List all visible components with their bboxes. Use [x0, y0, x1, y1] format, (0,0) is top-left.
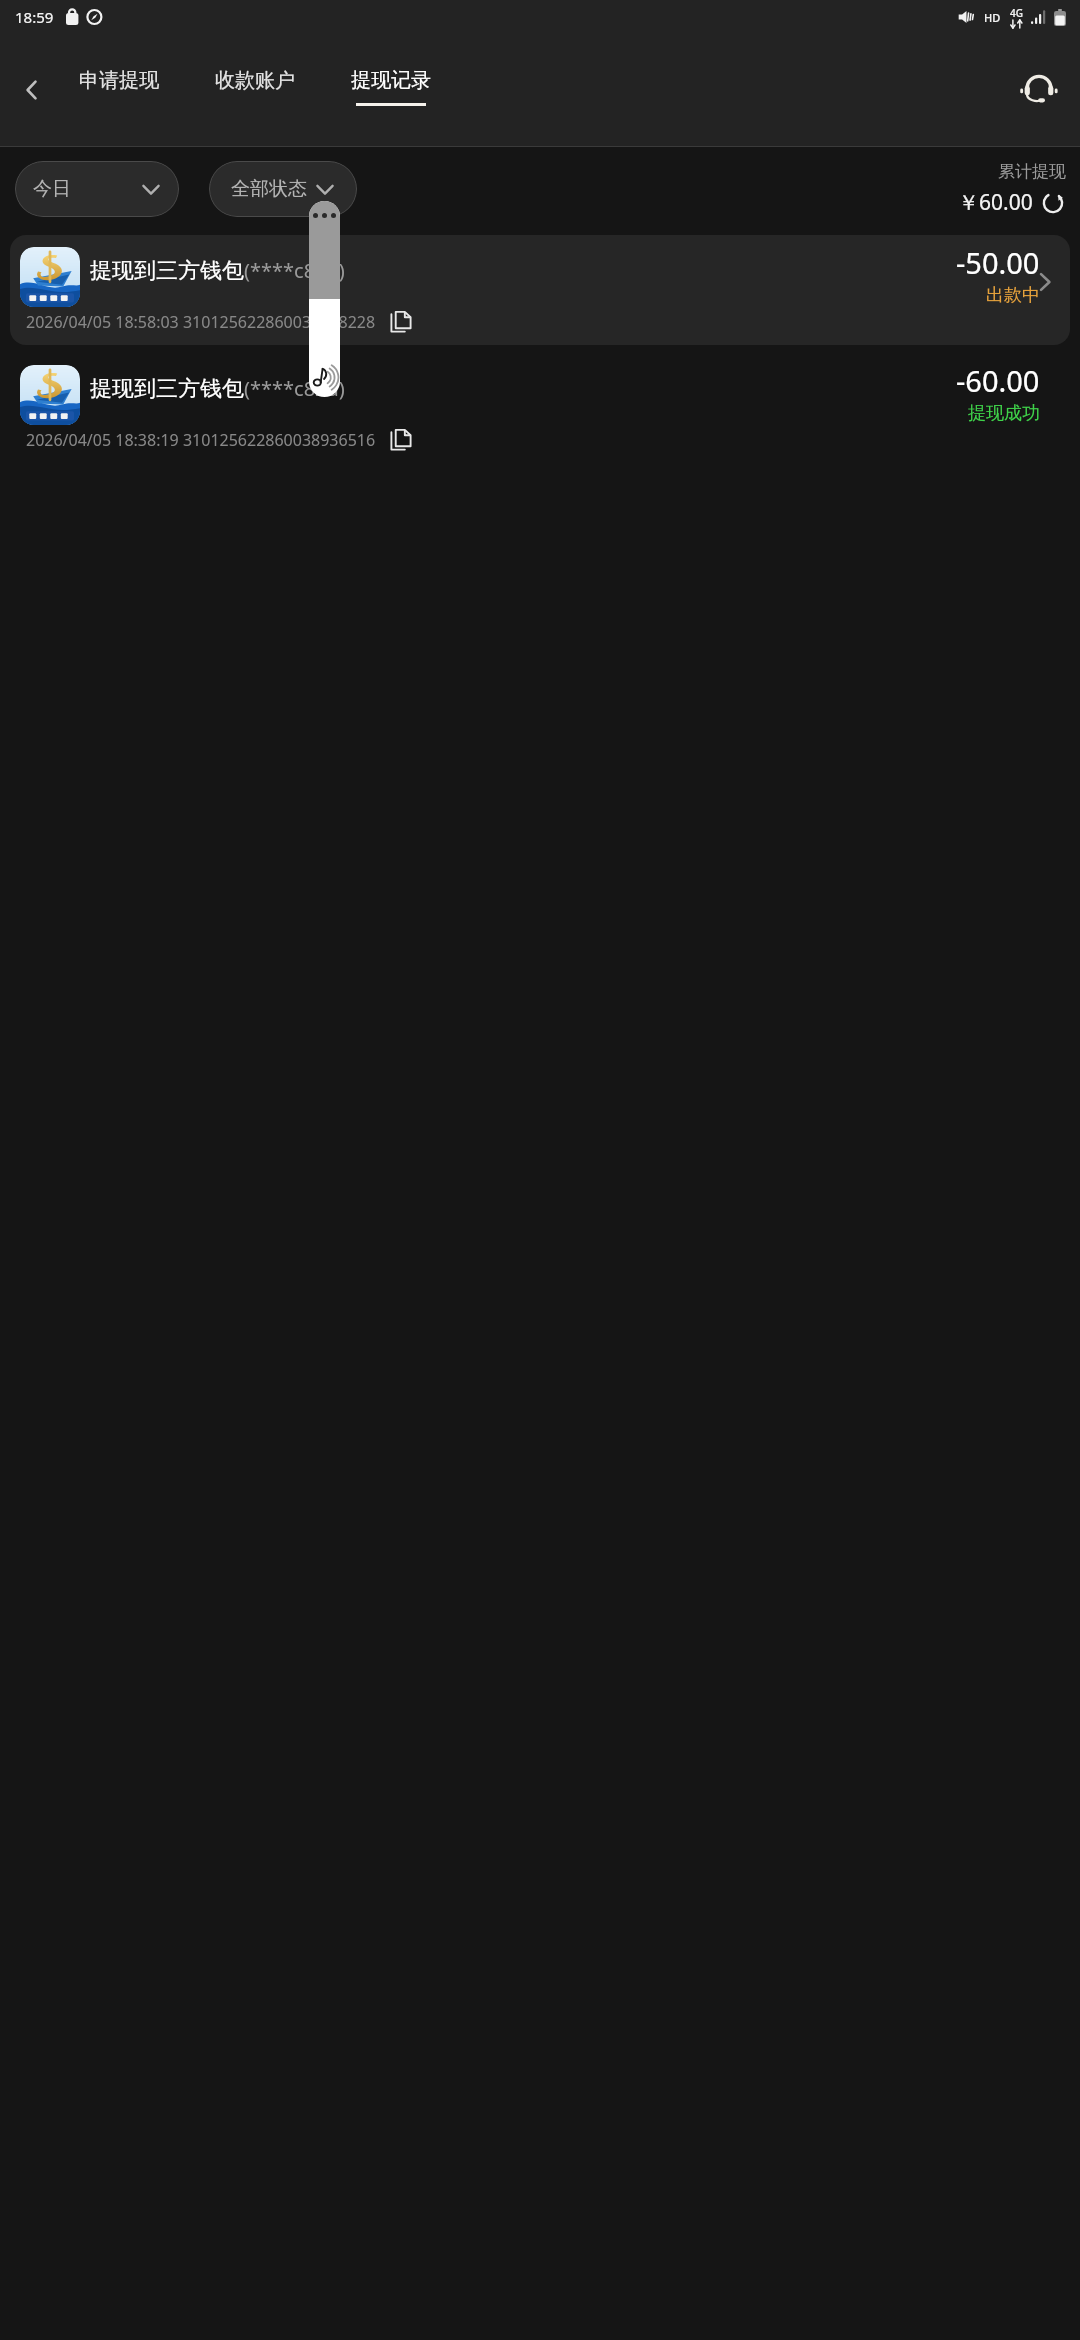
staticText: 累计提现	[998, 161, 1066, 182]
button[interactable]: 复制订单号	[386, 425, 416, 455]
button[interactable]: 复制订单号	[386, 307, 416, 337]
staticText: 2026/04/05 18:58:03 31012562286003977822…	[26, 311, 376, 333]
button[interactable]: 提现到三方钱包(****c82d)	[10, 353, 1070, 463]
button[interactable]: 收款账户	[198, 47, 312, 127]
button[interactable]: 申请提现	[62, 47, 176, 127]
staticText: 收款账户	[215, 68, 295, 93]
staticText: 2026/04/05 18:38:19 31012562286003893651…	[26, 429, 376, 451]
button[interactable]: 提现记录	[334, 47, 448, 127]
staticText: 提现到三方钱包(****c82d)	[90, 257, 345, 285]
button[interactable]: 返回	[4, 62, 60, 118]
staticText: 出款中	[986, 284, 1040, 307]
button[interactable]: 刷新	[1040, 190, 1066, 216]
staticText: HD	[984, 10, 1001, 25]
button[interactable]: 全部状态	[209, 161, 357, 217]
staticText: 今日	[33, 177, 71, 201]
staticText: 4G	[1010, 6, 1023, 20]
staticText: 18:59	[15, 7, 54, 27]
staticText: 全部状态	[231, 177, 307, 201]
staticText: 申请提现	[79, 68, 159, 93]
staticText: -60.00	[956, 361, 1040, 400]
staticText: 提现记录	[351, 68, 431, 93]
button[interactable]: 悬浮助手	[309, 201, 340, 397]
button[interactable]: 客服	[1012, 63, 1066, 117]
staticText: 提现到三方钱包(****c82d)	[90, 375, 345, 403]
button[interactable]: 今日	[15, 161, 179, 217]
staticText: -50.00	[956, 243, 1040, 282]
staticText: ￥60.00	[958, 188, 1033, 217]
staticText: 提现成功	[968, 402, 1040, 425]
button[interactable]: 提现到三方钱包(****c82d)	[10, 235, 1070, 345]
